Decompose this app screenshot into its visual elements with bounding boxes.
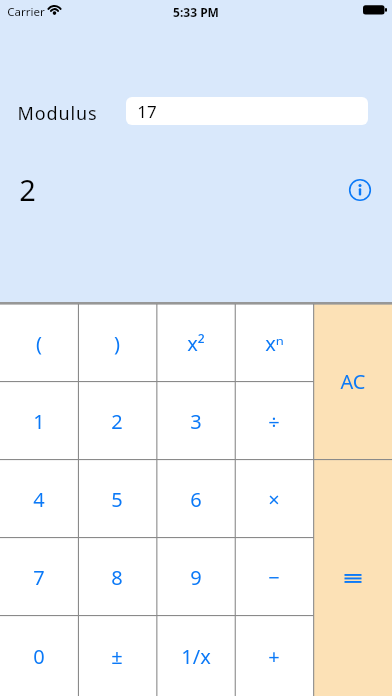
button[interactable]: 4	[0, 460, 78, 538]
button[interactable]: −	[235, 538, 313, 616]
button[interactable]	[314, 460, 392, 696]
button[interactable]: 1/x	[157, 616, 235, 696]
staticText: (	[36, 330, 42, 357]
staticText: −	[268, 564, 280, 591]
button[interactable]: 0	[0, 616, 78, 696]
button[interactable]: 3	[157, 382, 235, 460]
button[interactable]: )	[78, 304, 156, 382]
staticText: 4	[33, 486, 45, 513]
staticText: 3	[190, 408, 202, 435]
staticText: x²	[187, 330, 205, 357]
button[interactable]: 6	[157, 460, 235, 538]
staticText: 5:33 PM	[173, 4, 219, 20]
button[interactable]: x²	[157, 304, 235, 382]
staticText: 2	[111, 408, 123, 435]
button[interactable]: (	[0, 304, 78, 382]
staticText: 1	[33, 408, 45, 435]
staticText: 5	[111, 486, 123, 513]
staticText: ×	[268, 486, 280, 513]
button[interactable]: 7	[0, 538, 78, 616]
button[interactable]: xⁿ	[235, 304, 313, 382]
button[interactable]: 17	[126, 97, 368, 125]
button[interactable]: ±	[78, 616, 156, 696]
staticText: )	[114, 330, 120, 357]
staticText: ÷	[268, 408, 280, 435]
button[interactable]: 9	[157, 538, 235, 616]
button[interactable]: 2	[78, 382, 156, 460]
staticText: 1/x	[181, 643, 211, 670]
staticText: 7	[33, 564, 45, 591]
button[interactable]: 5	[78, 460, 156, 538]
button[interactable]: +	[235, 616, 313, 696]
staticText: 0	[33, 643, 45, 670]
staticText: 17	[137, 100, 157, 123]
button[interactable]: 8	[78, 538, 156, 616]
button[interactable]: ×	[235, 460, 313, 538]
staticText: +	[268, 643, 280, 670]
button[interactable]: 1	[0, 382, 78, 460]
staticText: 6	[190, 486, 202, 513]
staticText: 2	[19, 170, 36, 209]
staticText: ±	[111, 643, 123, 670]
button[interactable]: ÷	[235, 382, 313, 460]
staticText: Modulus	[17, 101, 98, 126]
button[interactable]	[346, 176, 374, 204]
staticText: Carrier	[7, 4, 45, 20]
staticText: 9	[190, 564, 202, 591]
staticText: AC	[340, 368, 366, 395]
staticText: 8	[111, 564, 123, 591]
button[interactable]: AC	[314, 304, 392, 459]
staticText: xⁿ	[265, 330, 284, 357]
